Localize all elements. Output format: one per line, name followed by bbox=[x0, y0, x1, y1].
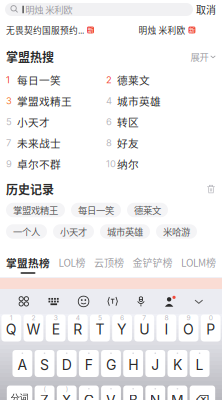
button[interactable]: 9 bbox=[179, 314, 198, 341]
button[interactable]: 德莱文 bbox=[127, 203, 168, 217]
button[interactable]: LOL榜 bbox=[58, 255, 85, 273]
button[interactable]: 10 bbox=[106, 153, 206, 174]
staticText: U bbox=[139, 321, 149, 338]
button[interactable]: 8 bbox=[106, 132, 206, 153]
button[interactable]: 5 bbox=[90, 314, 110, 341]
staticText: 卓尔不群 bbox=[17, 156, 61, 172]
button[interactable]: M bbox=[167, 385, 187, 400]
staticText: D bbox=[62, 356, 72, 373]
button[interactable]: 4 bbox=[106, 90, 206, 111]
staticText: 掌盟戏精王 bbox=[17, 93, 72, 109]
button[interactable]: Numeric keyboard bbox=[48, 296, 60, 307]
button[interactable]: K bbox=[167, 350, 187, 377]
button[interactable]: 云顶榜 bbox=[94, 255, 124, 273]
button[interactable]: V bbox=[101, 385, 121, 400]
button[interactable]: 无畏契约国服预约... bbox=[6, 25, 138, 35]
staticText: N bbox=[150, 392, 161, 400]
staticText: 城市英雄 bbox=[107, 225, 143, 238]
staticText: 明烛 米利欧 bbox=[25, 3, 72, 16]
button[interactable]: S bbox=[35, 350, 54, 377]
staticText: 云顶榜 bbox=[94, 255, 124, 270]
staticText: B bbox=[129, 392, 138, 400]
button[interactable]: Emoji bbox=[78, 296, 89, 307]
staticText: ⌫ bbox=[195, 392, 210, 400]
button[interactable]: 掌盟戏精王 bbox=[6, 203, 65, 217]
staticText: S bbox=[40, 356, 49, 373]
button[interactable]: Account bbox=[164, 296, 176, 307]
button[interactable]: LOLM榜 bbox=[181, 255, 216, 273]
button[interactable]: 米哈游 bbox=[156, 224, 197, 239]
button[interactable]: 3 bbox=[46, 314, 66, 341]
button[interactable] bbox=[7, 385, 32, 400]
button[interactable]: 一个人 bbox=[6, 224, 47, 239]
button[interactable]: 7 bbox=[134, 314, 154, 341]
staticText: 未来战士 bbox=[17, 135, 61, 151]
button[interactable]: D bbox=[57, 350, 77, 377]
button[interactable]: Keyboard layouts bbox=[18, 296, 30, 307]
staticText: 2 bbox=[106, 74, 112, 85]
staticText: 明烛 米利欧 bbox=[138, 24, 185, 36]
button[interactable]: G bbox=[101, 350, 121, 377]
button[interactable]: Voice input bbox=[136, 296, 146, 307]
staticText: 德莱文 bbox=[134, 203, 161, 217]
button[interactable]: 9 bbox=[6, 153, 106, 174]
staticText: LOL榜 bbox=[58, 255, 85, 270]
button[interactable] bbox=[190, 385, 215, 400]
staticText: 取消 bbox=[196, 2, 216, 17]
staticText: Z bbox=[40, 392, 49, 400]
button[interactable]: 6 bbox=[112, 314, 132, 341]
button[interactable]: 0 bbox=[201, 314, 221, 341]
button[interactable]: F bbox=[79, 350, 99, 377]
staticText: 7 bbox=[6, 137, 11, 148]
button[interactable]: C bbox=[79, 385, 99, 400]
button[interactable]: 1 bbox=[1, 314, 21, 341]
staticText: 2 bbox=[31, 314, 35, 322]
button[interactable]: Clear search history bbox=[206, 184, 216, 194]
button[interactable]: H bbox=[123, 350, 143, 377]
staticText: K bbox=[173, 356, 182, 373]
staticText: 1 bbox=[6, 74, 10, 85]
button[interactable]: ) bbox=[57, 385, 77, 400]
button[interactable]: 取消 bbox=[196, 3, 216, 16]
staticText: 小天才 bbox=[17, 114, 50, 130]
button[interactable]: 2 bbox=[106, 69, 206, 90]
button[interactable]: Text size bbox=[107, 296, 118, 307]
button[interactable]: 3 bbox=[6, 90, 106, 111]
staticText: ( bbox=[44, 385, 46, 393]
staticText: 掌盟戏精王 bbox=[13, 203, 58, 217]
button[interactable]: A bbox=[12, 350, 32, 377]
button[interactable]: B bbox=[123, 385, 143, 400]
button[interactable]: 城市英雄 bbox=[100, 224, 150, 239]
button[interactable]: L bbox=[190, 350, 210, 377]
button[interactable]: J bbox=[145, 350, 165, 377]
staticText: 10 bbox=[106, 158, 116, 169]
staticText: 金铲铲榜 bbox=[132, 255, 172, 270]
staticText: 9 bbox=[186, 314, 190, 322]
staticText: 6 bbox=[106, 116, 112, 127]
button[interactable]: 明烛 米利欧 bbox=[138, 25, 195, 35]
button[interactable]: 4 bbox=[68, 314, 88, 341]
button[interactable]: Hide keyboard bbox=[194, 296, 204, 306]
button[interactable]: 6 bbox=[106, 111, 206, 132]
staticText: J bbox=[151, 356, 159, 373]
staticText: 8 bbox=[164, 314, 168, 322]
staticText: 米哈游 bbox=[163, 225, 190, 238]
staticText: T bbox=[95, 321, 104, 338]
button[interactable]: 5 bbox=[6, 111, 106, 132]
staticText: X bbox=[62, 392, 72, 400]
staticText: R bbox=[73, 321, 82, 338]
staticText: 4 bbox=[106, 95, 112, 106]
button[interactable]: 小天才 bbox=[53, 224, 94, 239]
button[interactable]: 2 bbox=[24, 314, 43, 341]
button[interactable]: 金铲铲榜 bbox=[132, 255, 172, 273]
button[interactable]: N bbox=[145, 385, 165, 400]
button[interactable]: 每日一笑 bbox=[71, 203, 121, 217]
button[interactable]: ( bbox=[35, 385, 54, 400]
staticText: 转区 bbox=[117, 114, 139, 130]
button[interactable]: 7 bbox=[6, 132, 106, 153]
button[interactable]: 掌盟热榜 bbox=[6, 255, 50, 274]
button[interactable]: 1 bbox=[6, 69, 106, 90]
button[interactable]: 8 bbox=[156, 314, 176, 341]
staticText: 无畏契约国服预约... bbox=[6, 24, 84, 36]
button[interactable]: 展开 bbox=[190, 50, 216, 63]
